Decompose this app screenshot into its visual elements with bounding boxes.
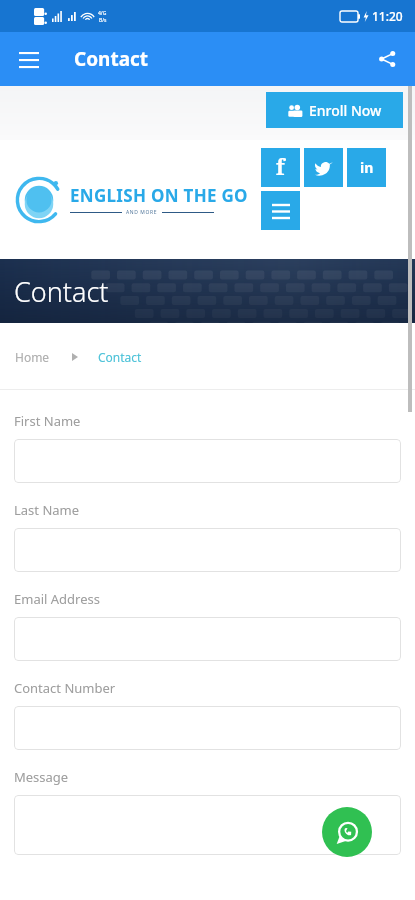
button[interactable]: Chat on WhatsApp	[322, 807, 372, 857]
button[interactable]: Open navigation menu	[12, 42, 46, 76]
button[interactable]: Home	[15, 349, 50, 365]
staticText: 4/G	[98, 10, 107, 17]
staticText: First Name	[14, 412, 81, 430]
staticText: Message	[14, 768, 69, 786]
staticText: B/s	[99, 17, 107, 24]
staticText: Contact Number	[14, 679, 116, 697]
button[interactable]: Enroll Now	[266, 92, 403, 128]
staticText: in	[360, 158, 374, 177]
button[interactable]	[14, 617, 401, 661]
button[interactable]	[14, 528, 401, 572]
staticText: Contact	[14, 273, 109, 310]
button[interactable]: Share	[369, 41, 405, 77]
button[interactable]	[14, 439, 401, 483]
button[interactable]: Facebook	[261, 148, 300, 187]
staticText: Email Address	[14, 590, 100, 608]
staticText: AND MORE	[126, 209, 158, 216]
staticText: Contact	[98, 349, 142, 365]
button[interactable]	[14, 795, 401, 855]
button[interactable]: Twitter	[304, 148, 343, 187]
button[interactable]: LinkedIn	[347, 148, 386, 187]
button[interactable]: ENGLISH ON THE GO	[16, 177, 248, 223]
staticText: ENGLISH ON THE GO	[70, 184, 248, 207]
staticText: f	[276, 153, 285, 182]
button[interactable]	[14, 706, 401, 750]
staticText: Contact	[74, 46, 149, 72]
button[interactable]: Open site menu	[261, 191, 300, 230]
staticText: Last Name	[14, 501, 80, 519]
staticText: 11:20	[372, 8, 403, 24]
staticText: Enroll Now	[309, 101, 382, 120]
